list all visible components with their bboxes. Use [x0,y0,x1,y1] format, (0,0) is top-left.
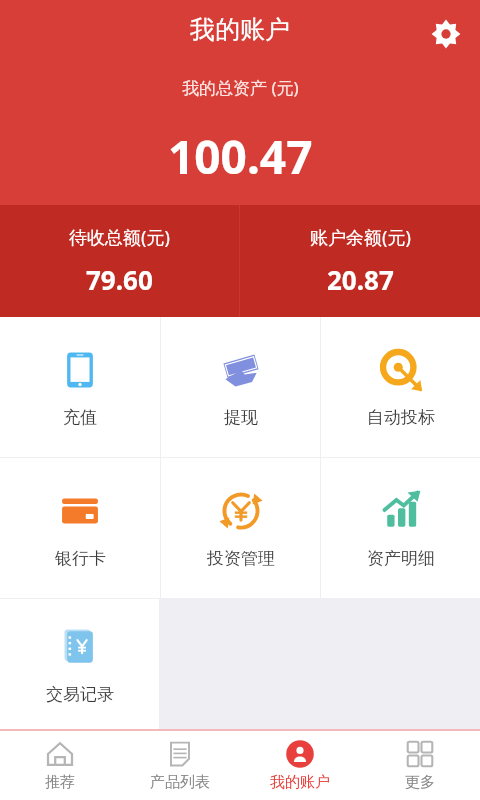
staticText: 20.87 [327,262,394,297]
button[interactable]: 交易记录 [0,599,159,729]
button[interactable]: 推荐 [0,731,120,800]
staticText: 我的账户 [270,773,330,792]
staticText: 资产明细 [367,548,435,569]
button[interactable]: 更多 [360,731,480,800]
staticText: 推荐 [45,773,75,792]
button[interactable]: 产品列表 [120,731,240,800]
button[interactable]: 银行卡 [0,458,160,598]
staticText: 100.47 [168,125,313,188]
staticText: 待收总额(元) [69,225,170,250]
staticText: 我的总资产 (元) [182,76,299,99]
staticText: 自动投标 [367,407,435,428]
button[interactable]: Settings [422,10,470,58]
staticText: 提现 [224,407,258,428]
button[interactable]: 自动投标 [321,317,480,457]
staticText: 投资管理 [207,548,275,569]
staticText: 我的账户 [190,14,290,45]
staticText: 充值 [63,407,97,428]
staticText: 账户余额(元) [310,225,411,250]
staticText: 交易记录 [46,684,114,705]
button[interactable]: 账户余额(元) [240,205,480,317]
button[interactable]: 资产明细 [321,458,480,598]
button[interactable]: 提现 [161,317,320,457]
staticText: 产品列表 [150,773,210,792]
staticText: 更多 [405,773,435,792]
staticText: 79.60 [86,262,153,297]
staticText: 银行卡 [55,548,106,569]
button[interactable]: 我的账户 [240,731,360,800]
button[interactable]: 投资管理 [161,458,320,598]
button[interactable]: 待收总额(元) [0,205,239,317]
button[interactable]: 充值 [0,317,160,457]
